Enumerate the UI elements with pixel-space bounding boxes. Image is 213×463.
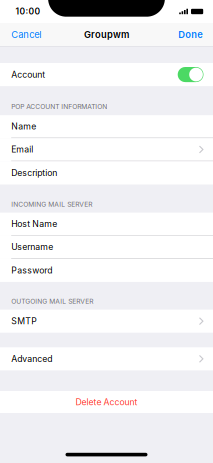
button[interactable]: Username: [0, 236, 213, 259]
staticText: Password: [11, 265, 52, 276]
button[interactable]: Password: [0, 259, 213, 282]
button[interactable]: Cancel: [0, 24, 47, 45]
staticText: Email: [11, 144, 33, 155]
staticText: Advanced: [11, 354, 52, 364]
staticText: INCOMING MAIL SERVER: [11, 200, 92, 208]
staticText: Account: [11, 69, 45, 80]
staticText: Host Name: [11, 219, 57, 229]
button[interactable]: Email: [0, 138, 213, 161]
button[interactable]: Name: [0, 115, 213, 138]
button[interactable]: SMTP: [0, 310, 213, 333]
staticText: OUTGOING MAIL SERVER: [11, 297, 93, 305]
button[interactable]: Description: [0, 161, 213, 184]
staticText: Delete Account: [75, 397, 137, 407]
staticText: Cancel: [11, 29, 41, 40]
staticText: Groupwm: [84, 29, 129, 40]
button[interactable]: Host Name: [0, 213, 213, 236]
button[interactable]: Advanced: [0, 347, 213, 370]
staticText: Username: [11, 242, 53, 252]
button[interactable]: Done: [172, 24, 213, 45]
staticText: Name: [11, 121, 36, 132]
staticText: Description: [11, 168, 57, 178]
staticText: POP ACCOUNT INFORMATION: [11, 103, 107, 111]
staticText: SMTP: [11, 316, 37, 326]
staticText: 10:00: [16, 6, 41, 17]
button[interactable]: Delete Account: [0, 391, 213, 413]
button[interactable]: Account: [0, 63, 213, 86]
staticText: Done: [178, 29, 203, 40]
